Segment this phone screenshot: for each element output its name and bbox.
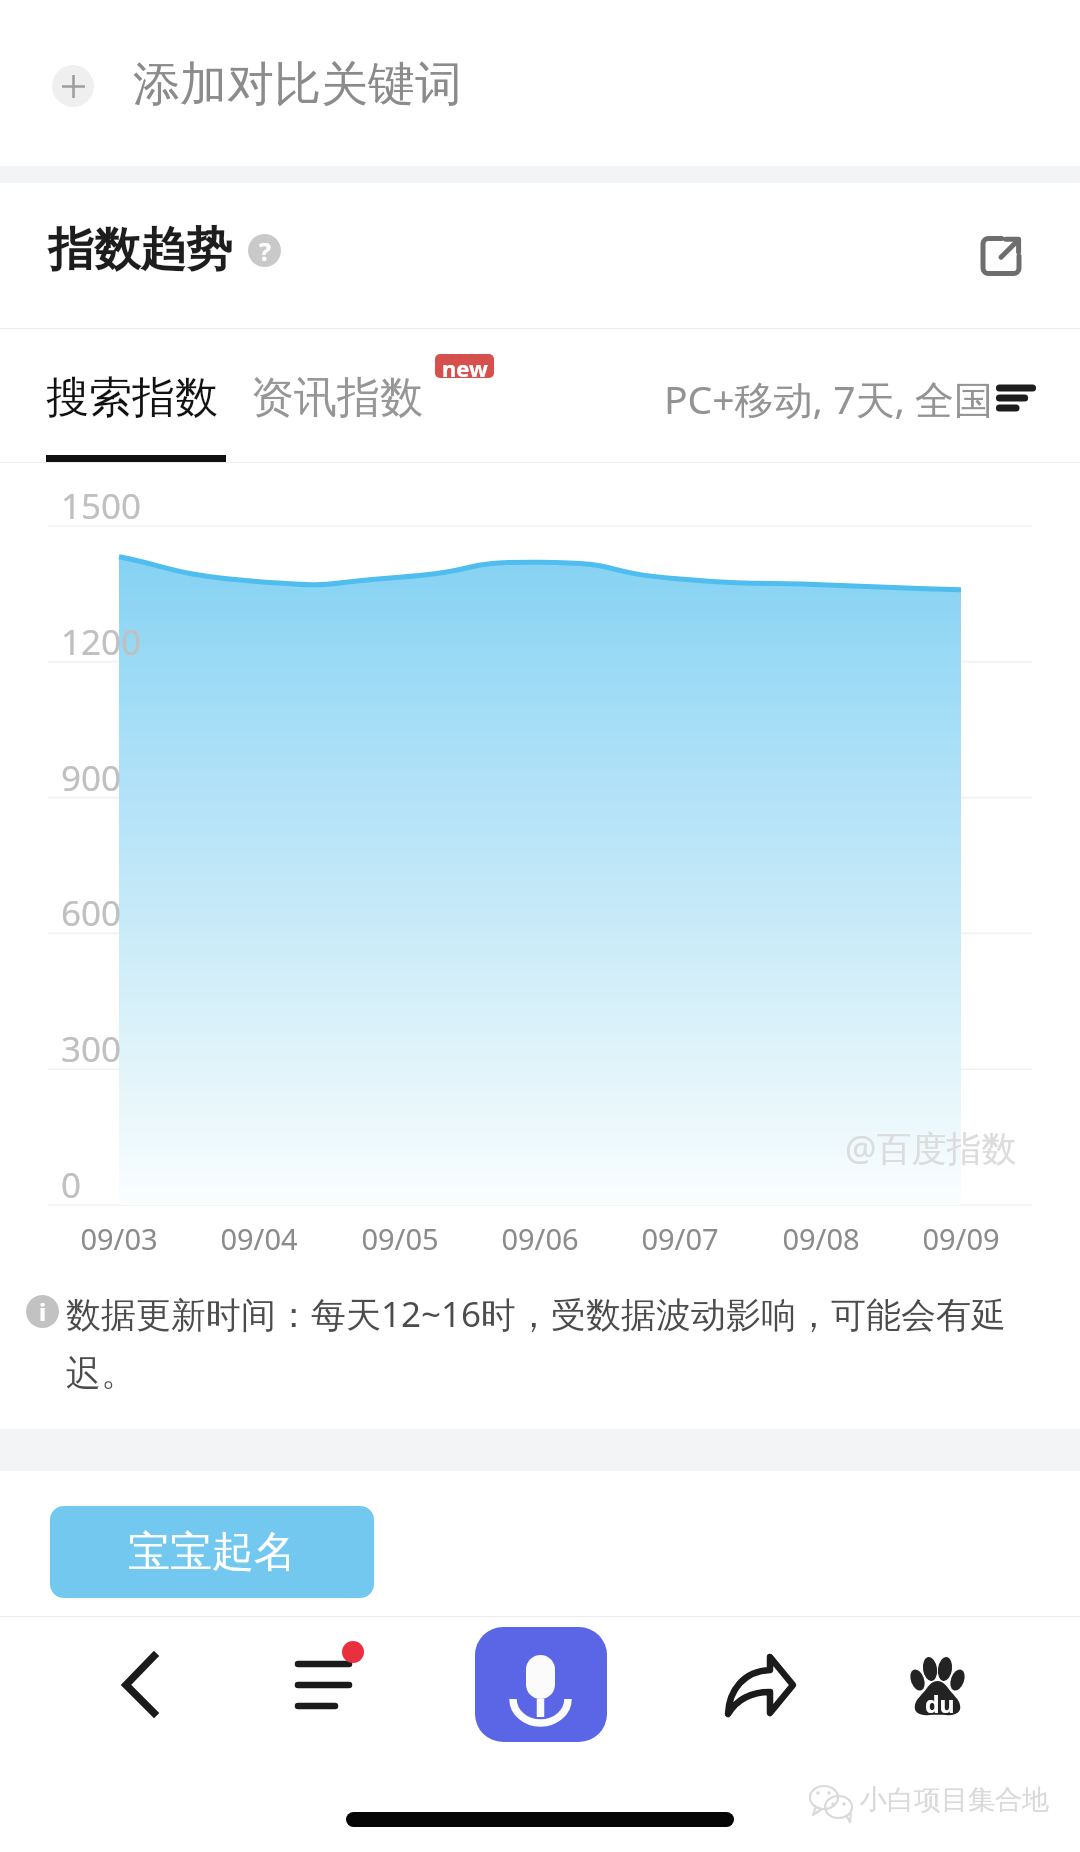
staticText: 09/04 [189, 1219, 329, 1258]
staticText: 900 [61, 754, 122, 802]
staticText: i [39, 1295, 47, 1328]
staticText: 600 [61, 889, 122, 937]
button[interactable]: 添加对比关键词 [0, 0, 1080, 166]
staticText: 09/08 [751, 1219, 891, 1258]
staticText: ? [259, 234, 271, 267]
staticText: 数据更新时间：每天12~16时，受数据波动影响，可能会有延迟。 [66, 1290, 1012, 1396]
button[interactable]: 搜索指数 [46, 371, 218, 425]
staticText: new [442, 354, 488, 377]
staticText: 小白项目集合地 [860, 1783, 1049, 1817]
button[interactable]: 语音搜索 [475, 1627, 607, 1742]
button[interactable]: 返回 [62, 1617, 198, 1753]
staticText: 添加对比关键词 [133, 55, 462, 114]
staticText: 搜索指数 [46, 371, 218, 425]
staticText: 宝宝起名 [128, 1526, 296, 1579]
staticText: 指数趋势 [48, 221, 232, 279]
staticText: 09/07 [610, 1219, 750, 1258]
button[interactable]: 菜单 [264, 1617, 400, 1753]
staticText: 1500 [61, 482, 142, 530]
staticText: 1200 [61, 618, 142, 666]
button[interactable]: 百度首页 [868, 1617, 1004, 1753]
staticText: 300 [61, 1025, 122, 1073]
staticText: @百度指数 [845, 1124, 1017, 1172]
staticText: 09/05 [330, 1219, 470, 1258]
button[interactable]: 指数趋势 [48, 221, 281, 279]
staticText: 09/09 [891, 1219, 1031, 1258]
staticText: du [925, 1688, 955, 1719]
button[interactable]: 分享 [690, 1617, 826, 1753]
button[interactable]: 宝宝起名 [50, 1506, 374, 1598]
staticText: 0 [61, 1161, 82, 1209]
staticText: PC+移动, 7天, 全国 [664, 372, 994, 425]
staticText: 资讯指数 [251, 371, 423, 425]
staticText: 09/03 [49, 1219, 189, 1258]
button[interactable]: 在浏览器中打开 [961, 216, 1041, 296]
staticText: 09/06 [470, 1219, 610, 1258]
button[interactable]: PC+移动, 7天, 全国 [664, 372, 1034, 425]
button[interactable]: 资讯指数 [251, 371, 423, 425]
